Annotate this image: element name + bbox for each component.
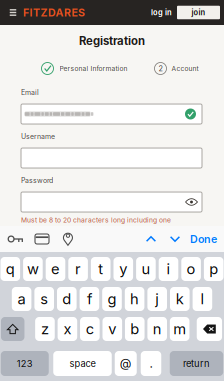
- staticText: k: [176, 290, 184, 308]
- staticText: g: [107, 290, 116, 308]
- staticText: i: [166, 260, 170, 278]
- staticText: space: [69, 358, 95, 369]
- staticText: Username: [21, 132, 55, 141]
- button[interactable]: c: [80, 317, 100, 341]
- button[interactable]: Scan credit card: [29, 226, 55, 251]
- staticText: j: [155, 290, 159, 308]
- staticText: u: [141, 260, 150, 278]
- staticText: Done: [190, 232, 217, 245]
- button[interactable]: .: [141, 351, 161, 376]
- button[interactable]: Done: [187, 226, 224, 251]
- staticText: r: [75, 260, 81, 278]
- button[interactable]: h: [125, 287, 144, 311]
- button[interactable]: b: [125, 317, 145, 341]
- button[interactable]: Previous field: [139, 226, 163, 251]
- button[interactable]: d: [57, 287, 77, 311]
- button[interactable]: l: [193, 287, 212, 311]
- button[interactable]: @: [115, 351, 137, 376]
- button[interactable]: s: [34, 287, 54, 311]
- staticText: Account: [171, 64, 198, 73]
- staticText: t: [98, 260, 103, 278]
- staticText: a: [18, 290, 26, 308]
- staticText: Registration: [79, 34, 145, 48]
- button[interactable]: 123: [1, 351, 49, 376]
- staticText: q: [6, 260, 15, 278]
- button[interactable]: i: [159, 257, 178, 281]
- staticText: FITZDARES: [23, 6, 85, 19]
- button[interactable]: k: [170, 287, 190, 311]
- button[interactable]: Next field: [163, 226, 187, 251]
- staticText: Personal Information: [59, 64, 127, 73]
- staticText: .: [149, 356, 152, 371]
- button[interactable]: j: [147, 287, 167, 311]
- button[interactable]: space: [53, 351, 112, 376]
- staticText: l: [200, 290, 204, 308]
- staticText: return: [183, 358, 210, 369]
- button[interactable]: w: [23, 257, 43, 281]
- button[interactable]: u: [136, 257, 156, 281]
- staticText: e: [51, 260, 60, 278]
- staticText: z: [41, 320, 49, 338]
- button[interactable]: p: [204, 257, 223, 281]
- staticText: n: [153, 320, 162, 338]
- staticText: join: [191, 8, 205, 17]
- button[interactable]: Delete: [197, 317, 222, 341]
- staticText: x: [63, 320, 71, 338]
- staticText: f: [87, 290, 92, 308]
- button[interactable]: Show password: [181, 192, 202, 211]
- button[interactable]: x: [58, 317, 77, 341]
- staticText: o: [187, 260, 196, 278]
- staticText: Password: [21, 176, 53, 185]
- button[interactable]: n: [147, 317, 167, 341]
- button[interactable]: Location: [55, 226, 81, 251]
- staticText: s: [40, 290, 48, 308]
- button[interactable]: y: [113, 257, 133, 281]
- button[interactable]: Passwords: [2, 226, 29, 251]
- button[interactable]: g: [102, 287, 122, 311]
- button[interactable]: f: [80, 287, 99, 311]
- staticText: @: [120, 356, 132, 371]
- button[interactable]: return: [170, 351, 223, 376]
- staticText: b: [130, 320, 139, 338]
- staticText: p: [209, 260, 218, 278]
- button[interactable]: e: [46, 257, 65, 281]
- button[interactable]: q: [0, 257, 20, 281]
- button[interactable]: log in: [146, 0, 177, 25]
- button[interactable]: r: [68, 257, 88, 281]
- staticText: d: [62, 290, 71, 308]
- staticText: 2: [158, 64, 162, 73]
- staticText: y: [119, 260, 127, 278]
- staticText: c: [86, 320, 94, 338]
- staticText: v: [108, 320, 116, 338]
- staticText: h: [130, 290, 139, 308]
- staticText: 123: [17, 358, 33, 369]
- button[interactable]: t: [91, 257, 110, 281]
- button[interactable]: o: [181, 257, 201, 281]
- staticText: Email: [21, 88, 39, 97]
- staticText: m: [173, 320, 186, 338]
- button[interactable]: m: [170, 317, 189, 341]
- staticText: Must be 8 to 20 characters long includin…: [21, 216, 199, 240]
- button[interactable]: Menu: [0, 0, 23, 25]
- button[interactable]: join: [177, 6, 220, 19]
- button[interactable]: a: [12, 287, 31, 311]
- button[interactable]: Shift: [1, 317, 24, 341]
- button[interactable]: v: [102, 317, 122, 341]
- button[interactable]: z: [35, 317, 55, 341]
- staticText: w: [27, 260, 39, 278]
- staticText: log in: [151, 8, 172, 17]
